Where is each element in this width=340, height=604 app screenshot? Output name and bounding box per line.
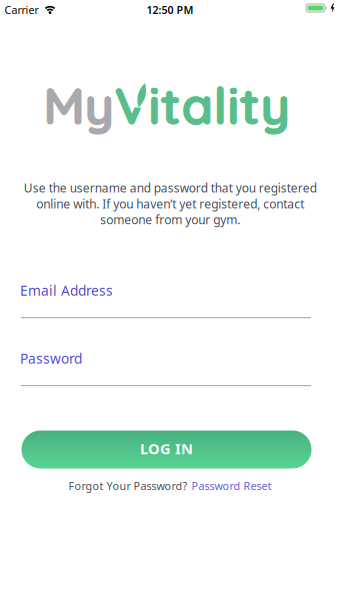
staticText: Password bbox=[20, 349, 82, 368]
button[interactable]: Password Reset bbox=[191, 478, 271, 493]
staticText: Carrier bbox=[4, 3, 38, 17]
staticText: Password Reset bbox=[191, 478, 271, 493]
staticText: Vitality bbox=[115, 74, 291, 137]
button[interactable]: LOG IN bbox=[21, 430, 311, 468]
button[interactable]: Email Address bbox=[20, 281, 310, 320]
staticText: Forgot Your Password? bbox=[68, 478, 187, 493]
staticText: Vitality bbox=[114, 73, 290, 137]
staticText: My bbox=[44, 74, 115, 137]
button[interactable]: Password bbox=[20, 349, 310, 388]
staticText: Email Address bbox=[20, 281, 113, 300]
staticText: LOG IN bbox=[140, 439, 193, 458]
staticText: My bbox=[43, 73, 114, 137]
staticText: 12:50 PM bbox=[146, 3, 193, 17]
staticText: Use the username and password that you r… bbox=[23, 180, 316, 228]
